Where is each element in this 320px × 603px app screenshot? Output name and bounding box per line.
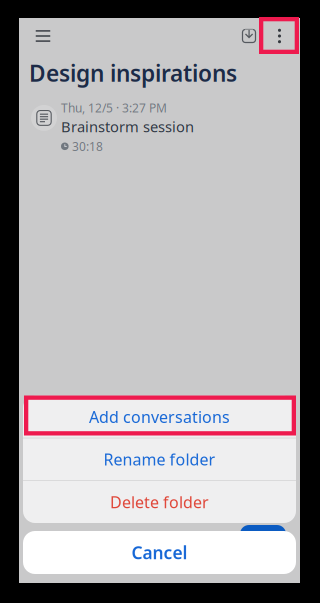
button[interactable]: Cancel — [19, 531, 300, 574]
staticText: Design inspirations — [29, 58, 237, 88]
button[interactable]: Menu — [27, 22, 59, 50]
button[interactable]: Delete folder — [23, 481, 296, 523]
staticText: 30:18 — [72, 138, 103, 154]
button[interactable]: Thu, 12/5 · 3:27 PM — [19, 94, 300, 154]
button[interactable]: Download — [234, 22, 264, 50]
button[interactable]: More options — [264, 21, 295, 50]
staticText: Brainstorm session — [61, 117, 194, 136]
staticText: Rename folder — [103, 449, 215, 470]
button[interactable]: Rename folder — [23, 438, 296, 480]
button[interactable]: Add conversations — [23, 396, 296, 438]
staticText: Thu, 12/5 · 3:27 PM — [61, 100, 167, 116]
staticText: Cancel — [131, 541, 187, 564]
staticText: Delete folder — [110, 491, 209, 513]
staticText: Add conversations — [89, 406, 230, 427]
